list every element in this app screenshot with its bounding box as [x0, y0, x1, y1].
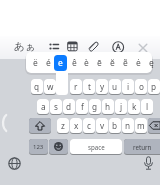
button[interactable]: é [42, 55, 54, 71]
staticText: q [34, 81, 40, 92]
button[interactable]: g [89, 99, 101, 115]
staticText: z [61, 120, 65, 131]
button[interactable]: あぁ [13, 39, 37, 53]
button[interactable]: d [63, 99, 75, 115]
staticText: あぁ [14, 40, 36, 53]
staticText: 123 [33, 143, 44, 151]
button[interactable] [49, 41, 60, 52]
staticText: è [84, 57, 89, 69]
button[interactable]: j [115, 99, 127, 115]
button[interactable]: e [54, 55, 67, 71]
button[interactable]: t [83, 79, 95, 95]
staticText: n [125, 120, 131, 131]
button[interactable]: v [96, 118, 108, 134]
button[interactable]: ē [93, 55, 105, 71]
staticText: ĕ [110, 57, 115, 69]
staticText: g [92, 101, 98, 112]
staticText: v [100, 120, 105, 131]
button[interactable]: ė [132, 55, 144, 71]
staticText: space [88, 143, 105, 151]
button[interactable]: h [102, 99, 114, 115]
button[interactable] [67, 41, 78, 52]
button[interactable]: n [122, 118, 134, 134]
staticText: i [127, 81, 130, 92]
button[interactable]: w [44, 79, 56, 95]
button[interactable]: ę [145, 55, 157, 71]
staticText: m [137, 120, 145, 131]
staticText: d [66, 101, 72, 112]
staticText: f [81, 101, 84, 112]
button[interactable]: return [124, 139, 160, 155]
button[interactable]: i [122, 79, 134, 95]
button[interactable] [29, 118, 51, 134]
staticText: s [54, 101, 58, 112]
button[interactable]: ẽ [119, 55, 131, 71]
button[interactable]: z [57, 118, 69, 134]
staticText: k [132, 101, 137, 112]
button[interactable]: o [135, 79, 147, 95]
button[interactable]: m [135, 118, 147, 134]
staticText: o [139, 81, 144, 92]
button[interactable]: space [70, 139, 122, 155]
button[interactable]: b [109, 118, 121, 134]
staticText: c [87, 120, 91, 131]
button[interactable] [8, 157, 21, 170]
button[interactable] [112, 41, 125, 54]
button[interactable]: u [109, 79, 121, 95]
button[interactable] [49, 139, 68, 155]
button[interactable]: ê [68, 55, 80, 71]
staticText: l [146, 101, 149, 112]
staticText: é [46, 57, 51, 69]
button[interactable]: 123 [29, 139, 48, 155]
staticText: u [112, 81, 118, 92]
staticText: r [74, 81, 78, 92]
button[interactable]: s [50, 99, 62, 115]
staticText: a [41, 101, 46, 112]
button[interactable]: q [31, 79, 43, 95]
staticText: y [100, 81, 105, 92]
staticText: p [151, 81, 157, 92]
staticText: ę [149, 57, 154, 69]
button[interactable]: l [141, 99, 153, 115]
button[interactable]: p [148, 79, 160, 95]
button[interactable]: ë [29, 55, 41, 71]
button[interactable]: x [70, 118, 82, 134]
staticText: ẽ [123, 57, 128, 69]
button[interactable]: c [83, 118, 95, 134]
staticText: t [88, 81, 91, 92]
staticText: ė [136, 57, 141, 69]
button[interactable]: y [96, 79, 108, 95]
button[interactable]: a [37, 99, 49, 115]
button[interactable]: k [128, 99, 140, 115]
button[interactable] [87, 40, 99, 52]
staticText: return [133, 143, 152, 151]
button[interactable]: f [76, 99, 88, 115]
staticText: ē [97, 57, 102, 69]
staticText: j [120, 101, 123, 112]
button[interactable]: ĕ [106, 55, 118, 71]
staticText: h [105, 101, 111, 112]
button[interactable]: r [70, 79, 82, 95]
button[interactable] [148, 118, 160, 134]
button[interactable] [143, 156, 154, 171]
button[interactable]: è [80, 55, 92, 71]
staticText: e [58, 57, 63, 69]
button[interactable] [138, 43, 148, 53]
staticText: x [74, 120, 79, 131]
staticText: b [112, 120, 118, 131]
staticText: ê [72, 57, 77, 69]
staticText: w [47, 81, 54, 92]
staticText: ë [33, 57, 38, 69]
